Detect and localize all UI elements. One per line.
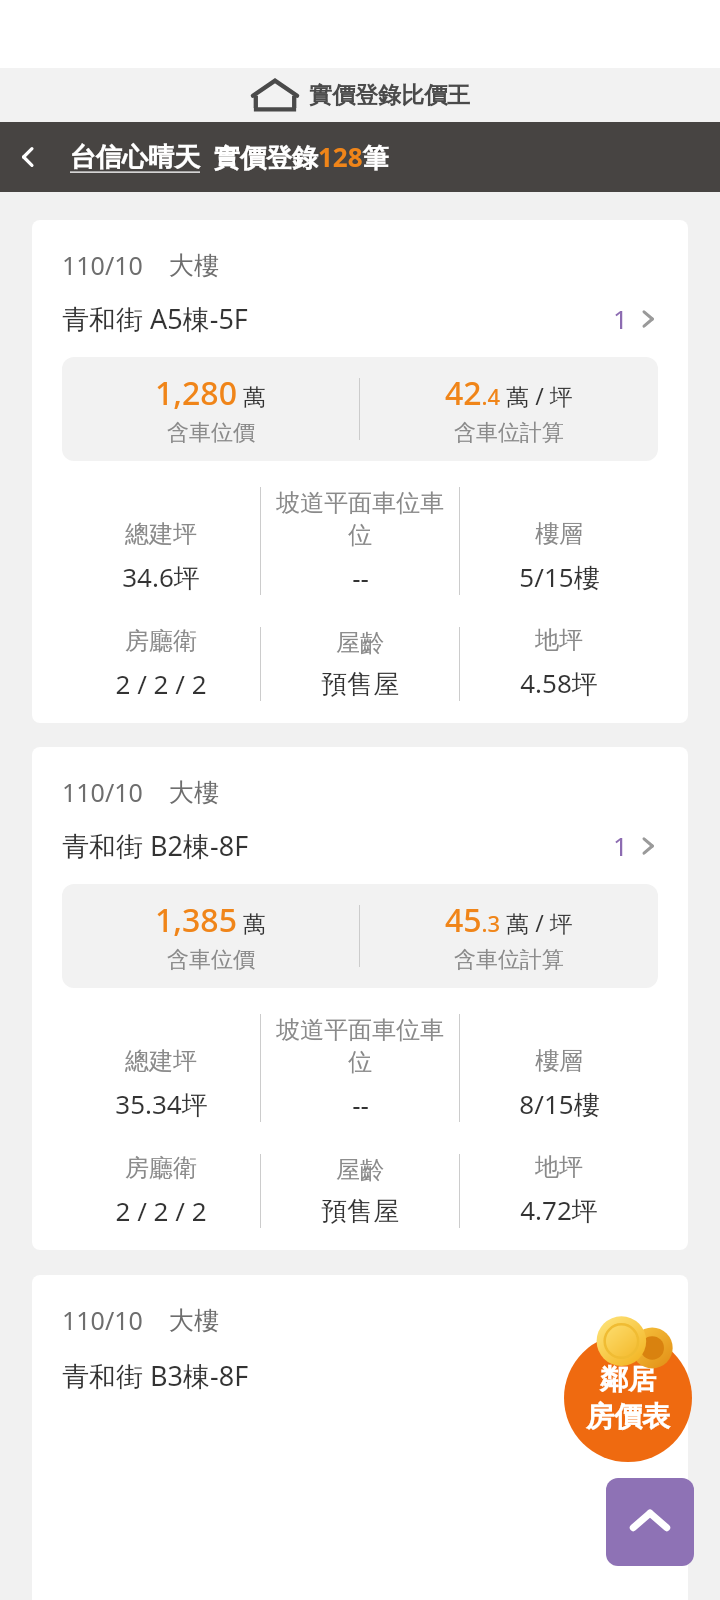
- staticText: 42.4 萬 / 坪: [445, 371, 573, 415]
- staticText: 鄰居: [600, 1362, 656, 1397]
- staticText: 4.72坪: [520, 1192, 598, 1228]
- staticText: 含車位價: [167, 419, 255, 447]
- staticText: 樓層: [535, 1046, 583, 1076]
- staticText: --: [352, 1087, 369, 1122]
- staticText: 青和街 B3棟-8F: [62, 1357, 249, 1394]
- staticText: 34.6坪: [122, 559, 200, 595]
- staticText: 含車位計算: [454, 419, 564, 447]
- staticText: --: [352, 560, 369, 595]
- staticText: 8/15樓: [519, 1086, 600, 1122]
- staticText: 總建坪: [125, 519, 197, 549]
- staticText: 5/15樓: [519, 559, 600, 595]
- staticText: 2 / 2 / 2: [115, 666, 207, 701]
- staticText: 地坪: [535, 625, 583, 655]
- button[interactable]: Back: [0, 129, 56, 185]
- button[interactable]: 台信心晴天: [70, 141, 200, 174]
- staticText: 總建坪: [125, 1046, 197, 1076]
- staticText: 110/10: [62, 775, 143, 809]
- staticText: 屋齡: [336, 628, 384, 658]
- staticText: 4.58坪: [520, 665, 598, 701]
- staticText: 實價登錄128筆: [214, 139, 389, 175]
- staticText: 坡道平面車位車位: [265, 488, 455, 550]
- button[interactable]: 110/10: [32, 1275, 688, 1600]
- staticText: 屋齡: [336, 1155, 384, 1185]
- staticText: 房廳衛: [125, 626, 197, 656]
- staticText: 含車位價: [167, 946, 255, 974]
- staticText: 2 / 2 / 2: [115, 1193, 207, 1228]
- staticText: 1,385 萬: [155, 898, 266, 942]
- staticText: 房廳衛: [125, 1153, 197, 1183]
- staticText: 房價表: [586, 1399, 670, 1434]
- button[interactable]: Scroll to top: [606, 1478, 694, 1566]
- staticText: 青和街 B2棟-8F: [62, 827, 249, 864]
- button[interactable]: 110/10: [32, 220, 688, 723]
- staticText: 35.34坪: [115, 1086, 208, 1122]
- staticText: 預售屋: [321, 1195, 399, 1228]
- staticText: 大樓: [169, 1305, 219, 1336]
- staticText: 實價登錄比價王: [309, 81, 470, 110]
- button[interactable]: 110/10: [32, 747, 688, 1250]
- staticText: 含車位計算: [454, 946, 564, 974]
- staticText: 坡道平面車位車位: [265, 1015, 455, 1077]
- staticText: 45.3 萬 / 坪: [445, 898, 573, 942]
- staticText: 地坪: [535, 1152, 583, 1182]
- staticText: 1: [613, 301, 628, 336]
- staticText: 1: [613, 828, 628, 863]
- staticText: 大樓: [169, 250, 219, 281]
- staticText: 預售屋: [321, 668, 399, 701]
- staticText: 樓層: [535, 519, 583, 549]
- staticText: 1,280 萬: [155, 371, 266, 415]
- staticText: 青和街 A5棟-5F: [62, 300, 248, 337]
- staticText: 大樓: [169, 777, 219, 808]
- button[interactable]: 鄰居房價表: [558, 1307, 698, 1462]
- staticText: 110/10: [62, 1303, 143, 1337]
- staticText: 110/10: [62, 248, 143, 282]
